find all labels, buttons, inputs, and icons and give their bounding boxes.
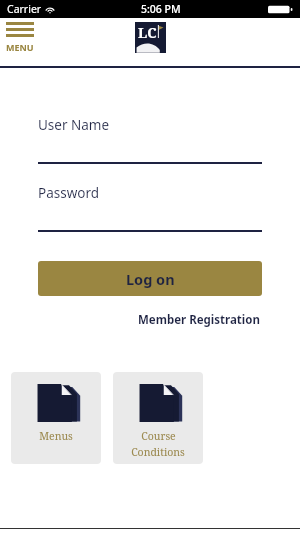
staticText: Member Registration: [138, 312, 260, 328]
button[interactable]: Home logo: [135, 22, 166, 53]
staticText: Course: [141, 429, 176, 443]
staticText: Password: [38, 184, 100, 202]
staticText: Conditions: [131, 445, 185, 459]
button[interactable]: Menu: [0, 18, 40, 55]
button[interactable]: Menus: [11, 372, 101, 464]
staticText: LC: [138, 23, 157, 42]
button[interactable]: Member Registration: [136, 310, 262, 330]
staticText: MENU: [6, 41, 34, 53]
staticText: Carrier: [7, 2, 42, 16]
staticText: Log on: [126, 269, 175, 289]
button[interactable]: Log on: [38, 261, 262, 296]
button[interactable]: Course: [113, 372, 203, 464]
staticText: User Name: [38, 116, 110, 134]
button[interactable]: Password: [38, 184, 262, 232]
button[interactable]: User Name: [38, 116, 262, 164]
staticText: Menus: [39, 429, 73, 443]
staticText: 5:06 PM: [141, 2, 181, 16]
